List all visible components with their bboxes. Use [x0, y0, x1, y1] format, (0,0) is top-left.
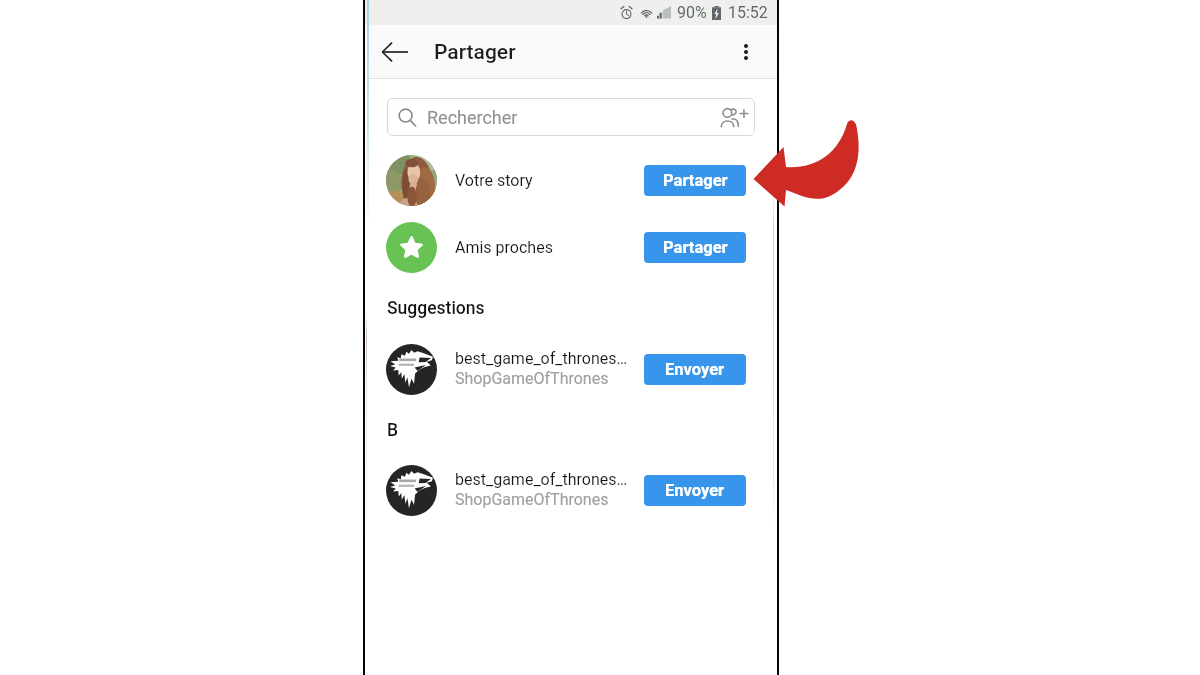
- staticText: Suggestions: [387, 298, 485, 319]
- staticText: Votre story: [455, 171, 533, 190]
- staticText: ShopGameOfThrones: [455, 369, 609, 388]
- staticText: ShopGameOfThrones: [455, 490, 609, 509]
- staticText: Partager: [434, 40, 516, 65]
- staticText: B: [387, 420, 399, 441]
- staticText: Envoyer: [665, 360, 725, 379]
- button[interactable]: Rechercher: [387, 98, 755, 136]
- staticText: best_game_of_thrones…: [455, 470, 628, 489]
- button[interactable]: Back: [373, 31, 415, 73]
- staticText: Partager: [663, 171, 728, 190]
- staticText: Envoyer: [665, 481, 725, 500]
- staticText: best_game_of_thrones…: [455, 349, 628, 368]
- staticText: Partager: [663, 238, 728, 257]
- button[interactable]: best_game_of_thrones…: [365, 339, 777, 399]
- button[interactable]: Partager: [644, 165, 746, 196]
- button[interactable]: Envoyer: [644, 475, 746, 506]
- button[interactable]: Votre story: [365, 150, 777, 210]
- button[interactable]: Envoyer: [644, 354, 746, 385]
- button[interactable]: Amis proches: [365, 217, 777, 277]
- button[interactable]: Partager: [644, 232, 746, 263]
- staticText: 90%: [677, 3, 707, 22]
- button[interactable]: More options: [726, 32, 766, 72]
- staticText: Rechercher: [427, 107, 518, 128]
- button[interactable]: Add people: [717, 99, 753, 135]
- button[interactable]: best_game_of_thrones…: [365, 460, 777, 520]
- staticText: 15:52: [728, 3, 768, 22]
- staticText: Amis proches: [455, 238, 553, 257]
